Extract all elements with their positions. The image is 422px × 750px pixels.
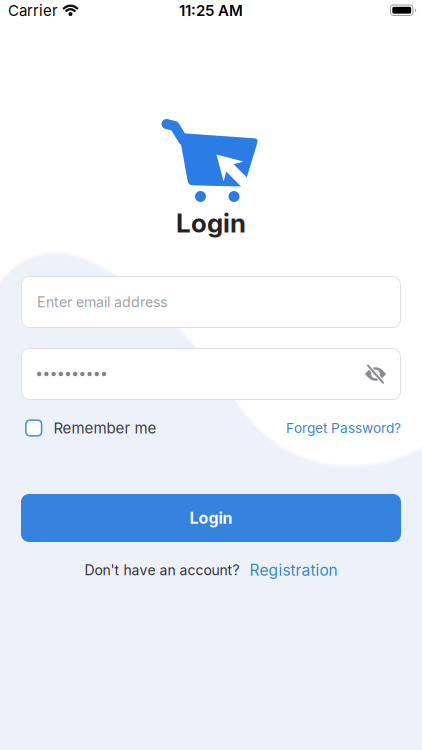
staticText: Login xyxy=(189,509,232,527)
staticText: Carrier xyxy=(8,2,58,19)
staticText: Don't have an account? xyxy=(84,562,239,578)
button[interactable]: Remember me xyxy=(25,419,156,437)
button[interactable]: Login xyxy=(21,494,401,542)
staticText: Registration xyxy=(249,561,337,579)
button[interactable]: Registration xyxy=(249,561,337,579)
button[interactable]: Enter email address xyxy=(21,276,401,328)
staticText: Enter email address xyxy=(37,294,167,310)
button[interactable]: Show password xyxy=(365,364,401,383)
button[interactable]: Password xyxy=(21,348,401,400)
staticText: Forget Password? xyxy=(286,420,401,436)
staticText: 11:25 AM xyxy=(179,2,243,19)
staticText: Login xyxy=(176,208,246,238)
button[interactable]: Forget Password? xyxy=(286,420,401,436)
staticText: Remember me xyxy=(53,419,156,437)
